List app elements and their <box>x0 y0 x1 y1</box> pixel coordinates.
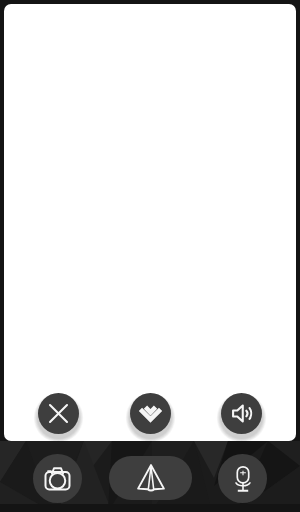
button[interactable]: Collapse <box>130 393 171 434</box>
button[interactable]: Camera <box>33 454 82 503</box>
button[interactable]: Microphone <box>218 454 267 503</box>
button[interactable]: Volume <box>221 393 262 434</box>
button[interactable]: Close <box>38 393 79 434</box>
button[interactable]: Send <box>109 456 192 500</box>
